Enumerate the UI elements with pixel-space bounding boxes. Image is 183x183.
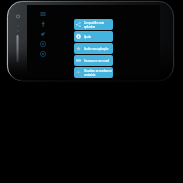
button[interactable]: Twitter (40, 31, 46, 37)
staticText: Ajuda (84, 35, 91, 39)
button[interactable]: Escreva-me um email (74, 55, 113, 66)
staticText: Escreva-me um email (84, 59, 109, 63)
button[interactable]: Avalie essa aplicação (74, 43, 113, 54)
button[interactable]: Ajuda (74, 31, 113, 42)
button[interactable]: Facebook (40, 21, 46, 27)
button[interactable]: Visualizar as receitas no conteúdo (74, 67, 113, 78)
staticText: Compartilhe esta aplicativo (84, 21, 105, 28)
button[interactable]: Compartilhe esta aplicativo (74, 19, 113, 30)
staticText: Visualizar as receitas no conteúdo (84, 69, 112, 76)
staticText: Avalie essa aplicação (84, 47, 109, 51)
button[interactable]: Instagram (40, 51, 46, 57)
button[interactable]: Google Plus (40, 41, 46, 47)
button[interactable]: Menu (40, 11, 46, 17)
